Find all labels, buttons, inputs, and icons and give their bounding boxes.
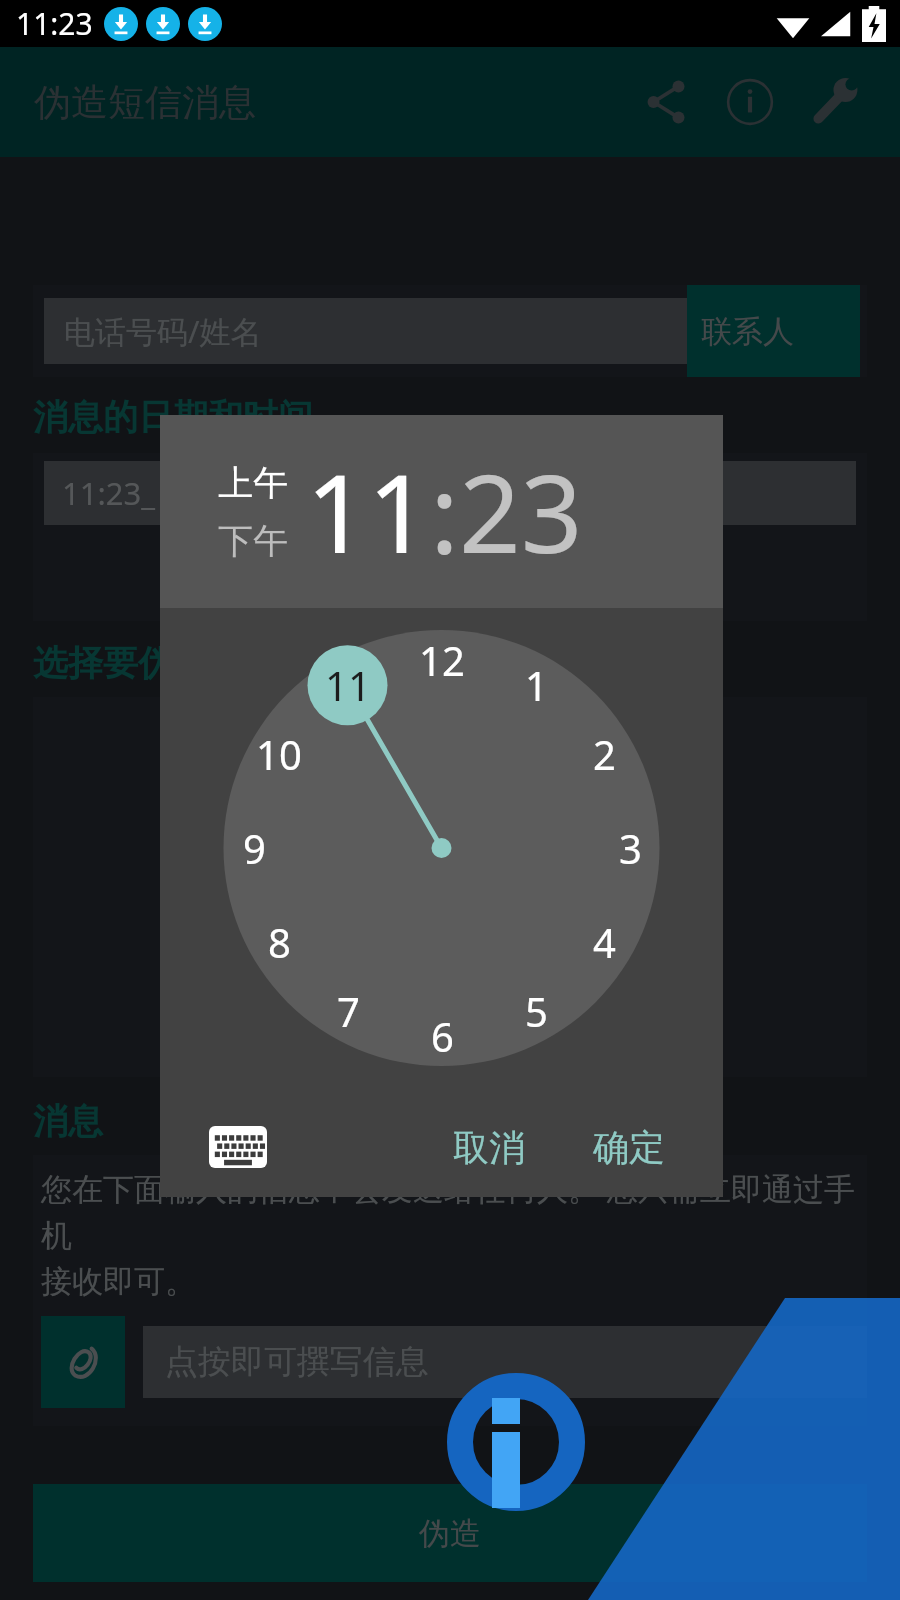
staticText: 23 [459, 438, 583, 585]
button[interactable]: 联系人 [687, 285, 860, 377]
staticText: 2 [593, 727, 616, 781]
staticText: 电话号码/姓名 [64, 310, 262, 352]
staticText: 7 [337, 984, 360, 1038]
button[interactable]: 5 [500, 980, 572, 1042]
button[interactable]: 下午 [218, 519, 288, 563]
button[interactable]: 11 [306, 438, 430, 585]
staticText: : [430, 438, 459, 585]
button[interactable]: 6 [406, 1005, 478, 1067]
button[interactable]: 电话号码/姓名 [44, 298, 687, 364]
button[interactable]: Share [624, 60, 708, 144]
staticText: 联系人 [701, 312, 794, 351]
button[interactable]: 伪造 [33, 1484, 867, 1582]
button[interactable]: 确定 [581, 1115, 677, 1180]
staticText: 9 [243, 821, 266, 875]
button[interactable]: 3 [594, 817, 666, 879]
staticText: 4 [593, 915, 616, 969]
button[interactable]: Keyboard input [208, 1124, 268, 1170]
staticText: 您在下面输入的信息不会发送给任何人。 您只需立即通过手机 接收即可。 [41, 1167, 867, 1302]
button[interactable]: 12 [406, 629, 478, 691]
staticText: 11 [306, 438, 430, 585]
staticText: 上午 [218, 461, 288, 505]
staticText: 11 [325, 658, 371, 712]
button[interactable]: 9 [218, 817, 290, 879]
button[interactable]: 取消 [441, 1115, 537, 1180]
staticText: 点按即可撰写信息 [165, 1341, 429, 1383]
staticText: 1 [525, 658, 548, 712]
button[interactable]: 上午 [218, 461, 288, 505]
staticText: 8 [268, 915, 291, 969]
staticText: 12 [419, 633, 465, 687]
button[interactable]: 10 [243, 723, 315, 785]
staticText: 5 [525, 984, 548, 1038]
staticText: 3 [619, 821, 642, 875]
button[interactable]: 2 [568, 723, 640, 785]
staticText: 消息 [33, 1099, 103, 1143]
button[interactable]: 4 [568, 911, 640, 973]
staticText: 11:23_ [62, 472, 155, 514]
staticText: 11:23 [16, 3, 93, 44]
staticText: 伪造短信消息 [34, 79, 256, 126]
button[interactable]: 点按即可撰写信息 [143, 1326, 867, 1398]
button[interactable]: 8 [243, 911, 315, 973]
staticText: 确定 [593, 1125, 665, 1170]
button[interactable]: 11 [312, 654, 384, 716]
staticText: 取消 [453, 1125, 525, 1170]
button[interactable]: 1 [500, 654, 572, 716]
staticText: 选择要伪造的消息 [33, 641, 313, 685]
button[interactable]: 7 [312, 980, 384, 1042]
staticText: 6 [431, 1009, 454, 1063]
staticText: 10 [256, 727, 302, 781]
button[interactable]: Attach [41, 1316, 125, 1408]
staticText: 消息的日期和时间 [33, 395, 313, 439]
staticText: 下午 [218, 519, 288, 563]
staticText: 伪造 [419, 1514, 481, 1553]
button[interactable]: 11:23_ [44, 461, 856, 525]
button[interactable]: Info [708, 60, 792, 144]
button[interactable]: 23 [459, 438, 583, 585]
button[interactable]: Settings [792, 60, 876, 144]
